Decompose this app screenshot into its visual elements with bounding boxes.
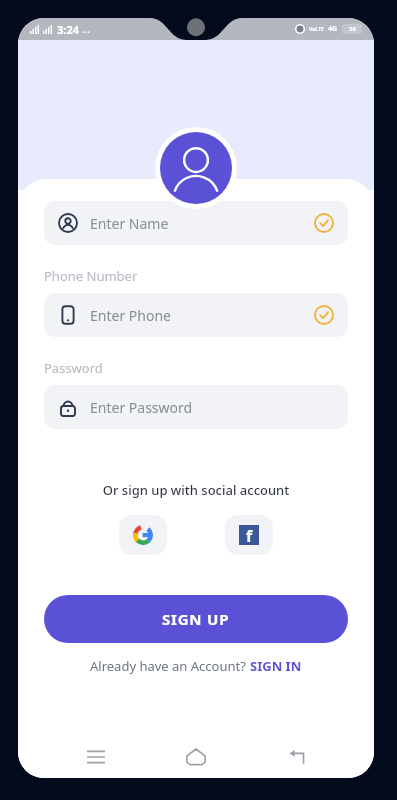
staticText: Phone Number [44, 267, 138, 285]
button[interactable]: Already have an Account? [44, 657, 348, 675]
staticText: 3:24 [57, 22, 79, 37]
button[interactable]: Recents [74, 736, 118, 778]
button[interactable]: Enter Name [44, 201, 348, 245]
staticText: SIGN IN [250, 657, 302, 675]
button[interactable]: Enter Phone [44, 293, 348, 337]
button[interactable]: Sign up with Facebook [225, 515, 273, 555]
staticText: Enter Phone [90, 306, 171, 325]
staticText: SIGN UP [162, 609, 230, 629]
staticText: f [246, 525, 253, 545]
button[interactable]: Enter Password [44, 385, 348, 429]
staticText: Password [44, 359, 103, 377]
button[interactable]: Home [174, 736, 218, 778]
staticText: ... [82, 22, 91, 36]
staticText: Enter Password [90, 398, 193, 417]
button[interactable]: SIGN UP [44, 595, 348, 643]
staticText: VoLTE [309, 26, 324, 33]
staticText: Already have an Account? [90, 657, 250, 675]
button[interactable]: Sign up with Google [119, 515, 167, 555]
staticText: 4G [328, 24, 338, 34]
staticText: Enter Name [90, 214, 169, 233]
staticText: Or sign up with social account [44, 481, 348, 499]
staticText: 56 [349, 25, 356, 33]
button[interactable]: Back [274, 736, 318, 778]
